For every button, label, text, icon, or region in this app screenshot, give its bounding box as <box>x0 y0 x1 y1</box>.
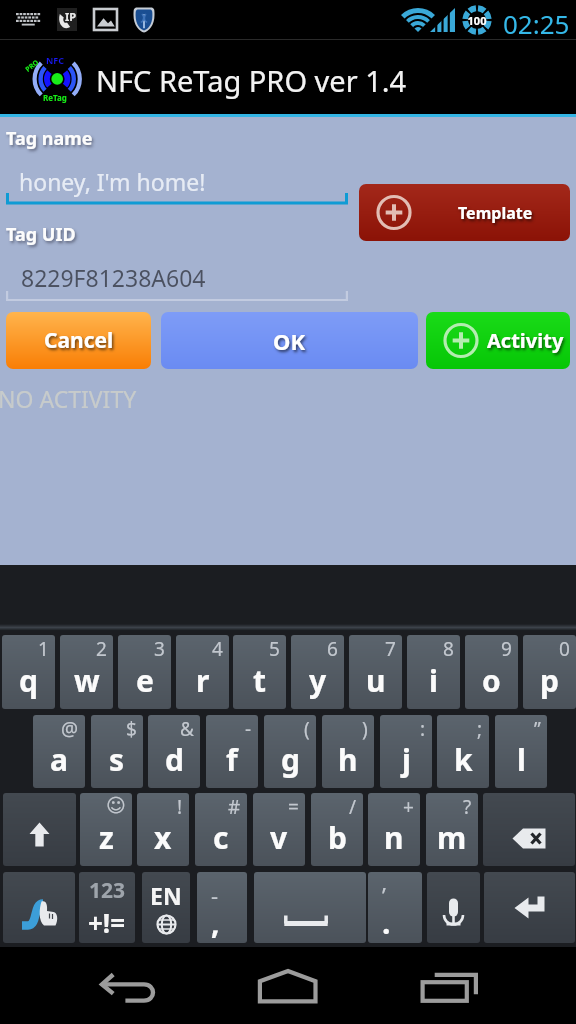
staticText: Cancel <box>44 326 114 355</box>
button[interactable]: & <box>148 715 200 788</box>
staticText: x <box>154 817 172 858</box>
staticText: 1 <box>38 636 49 662</box>
staticText: Tag name <box>6 126 93 151</box>
button[interactable]: Space <box>254 872 366 943</box>
staticText: 100 <box>462 13 492 28</box>
staticText: ( <box>304 716 310 742</box>
button[interactable]: 6 <box>291 635 344 709</box>
staticText: NO ACTIVITY <box>0 383 137 414</box>
button[interactable]: 3 <box>118 635 171 709</box>
staticText: : <box>420 716 426 742</box>
staticText: ) <box>362 716 368 742</box>
staticText: 4 <box>212 636 223 662</box>
button[interactable]: : <box>380 715 432 788</box>
button[interactable]: ! <box>137 793 189 866</box>
staticText: ’ <box>382 880 386 910</box>
staticText: m <box>437 817 467 858</box>
button[interactable]: ( <box>264 715 316 788</box>
button[interactable]: # <box>195 793 247 866</box>
staticText: z <box>99 817 114 858</box>
staticText: 5 <box>269 636 280 662</box>
button[interactable]: Cancel <box>6 312 151 369</box>
button[interactable]: Voice input <box>427 872 480 943</box>
button[interactable]: Swipe input <box>3 872 75 943</box>
staticText: - <box>211 880 219 910</box>
staticText: v <box>270 817 288 858</box>
staticText: f <box>226 739 238 780</box>
button[interactable]: 1 <box>2 635 55 709</box>
staticText: ☺ <box>106 794 126 816</box>
staticText: 9 <box>501 636 512 662</box>
button[interactable]: 4 <box>176 635 229 709</box>
staticText: # <box>228 794 241 820</box>
staticText: . <box>382 902 391 943</box>
button[interactable]: Activity <box>426 312 570 369</box>
button[interactable]: OK <box>161 312 418 369</box>
button[interactable]: Change language <box>142 872 190 943</box>
staticText: h <box>338 739 358 780</box>
staticText: $ <box>126 716 137 742</box>
staticText: q <box>19 660 38 701</box>
staticText: +!= <box>88 905 126 940</box>
button[interactable]: Template <box>359 184 570 241</box>
staticText: 2 <box>96 636 107 662</box>
button[interactable]: Home <box>248 965 328 1007</box>
button[interactable]: ) <box>322 715 374 788</box>
staticText: i <box>429 660 438 701</box>
button[interactable]: Shift <box>3 793 76 866</box>
staticText: IP <box>65 9 77 24</box>
staticText: t <box>253 660 267 701</box>
button[interactable]: = <box>253 793 305 866</box>
button[interactable]: ’ <box>368 872 422 943</box>
staticText: ? <box>463 794 472 820</box>
button[interactable]: $ <box>91 715 143 788</box>
staticText: b <box>328 817 347 858</box>
button[interactable]: Backspace <box>483 793 575 866</box>
button[interactable]: @ <box>33 715 85 788</box>
button[interactable]: - <box>197 872 247 943</box>
button[interactable]: ” <box>495 715 547 788</box>
button[interactable]: 0 <box>523 635 576 709</box>
button[interactable]: 7 <box>349 635 402 709</box>
staticText: 6 <box>327 636 338 662</box>
button[interactable]: - <box>206 715 258 788</box>
staticText: ReTag <box>43 92 67 103</box>
button[interactable]: + <box>368 793 420 866</box>
staticText: OK <box>273 326 306 356</box>
staticText: 8 <box>443 636 454 662</box>
button[interactable]: 5 <box>233 635 286 709</box>
staticText: p <box>540 660 559 701</box>
button[interactable]: Symbols <box>79 872 135 943</box>
button[interactable]: 9 <box>465 635 518 709</box>
button[interactable]: / <box>311 793 363 866</box>
staticText: 0 <box>559 636 570 662</box>
staticText: e <box>136 660 154 701</box>
button[interactable]: ☺ <box>80 793 132 866</box>
staticText: ” <box>534 716 541 742</box>
button[interactable]: 2 <box>60 635 113 709</box>
staticText: d <box>165 739 184 780</box>
staticText: ! <box>177 794 183 820</box>
staticText: n <box>384 817 404 858</box>
staticText: + <box>403 794 414 820</box>
staticText: r <box>196 660 210 701</box>
button[interactable]: 8 <box>407 635 460 709</box>
staticText: / <box>349 794 357 820</box>
staticText: Tag UID <box>6 222 76 247</box>
button[interactable]: ? <box>426 793 478 866</box>
staticText: o <box>482 660 501 701</box>
staticText: 3 <box>154 636 165 662</box>
button[interactable]: Back <box>95 965 165 1010</box>
staticText: PRO <box>23 57 41 74</box>
button[interactable]: Recent apps <box>408 965 488 1009</box>
staticText: y <box>309 660 327 701</box>
button[interactable]: Enter <box>484 872 575 943</box>
staticText: j <box>402 739 411 780</box>
staticText: Activity <box>487 327 564 354</box>
staticText: = <box>288 794 299 820</box>
button[interactable]: ; <box>437 715 489 788</box>
staticText: k <box>454 739 473 780</box>
staticText: honey, I'm home! <box>19 166 206 197</box>
staticText: g <box>281 739 300 780</box>
staticText: EN <box>150 880 182 911</box>
